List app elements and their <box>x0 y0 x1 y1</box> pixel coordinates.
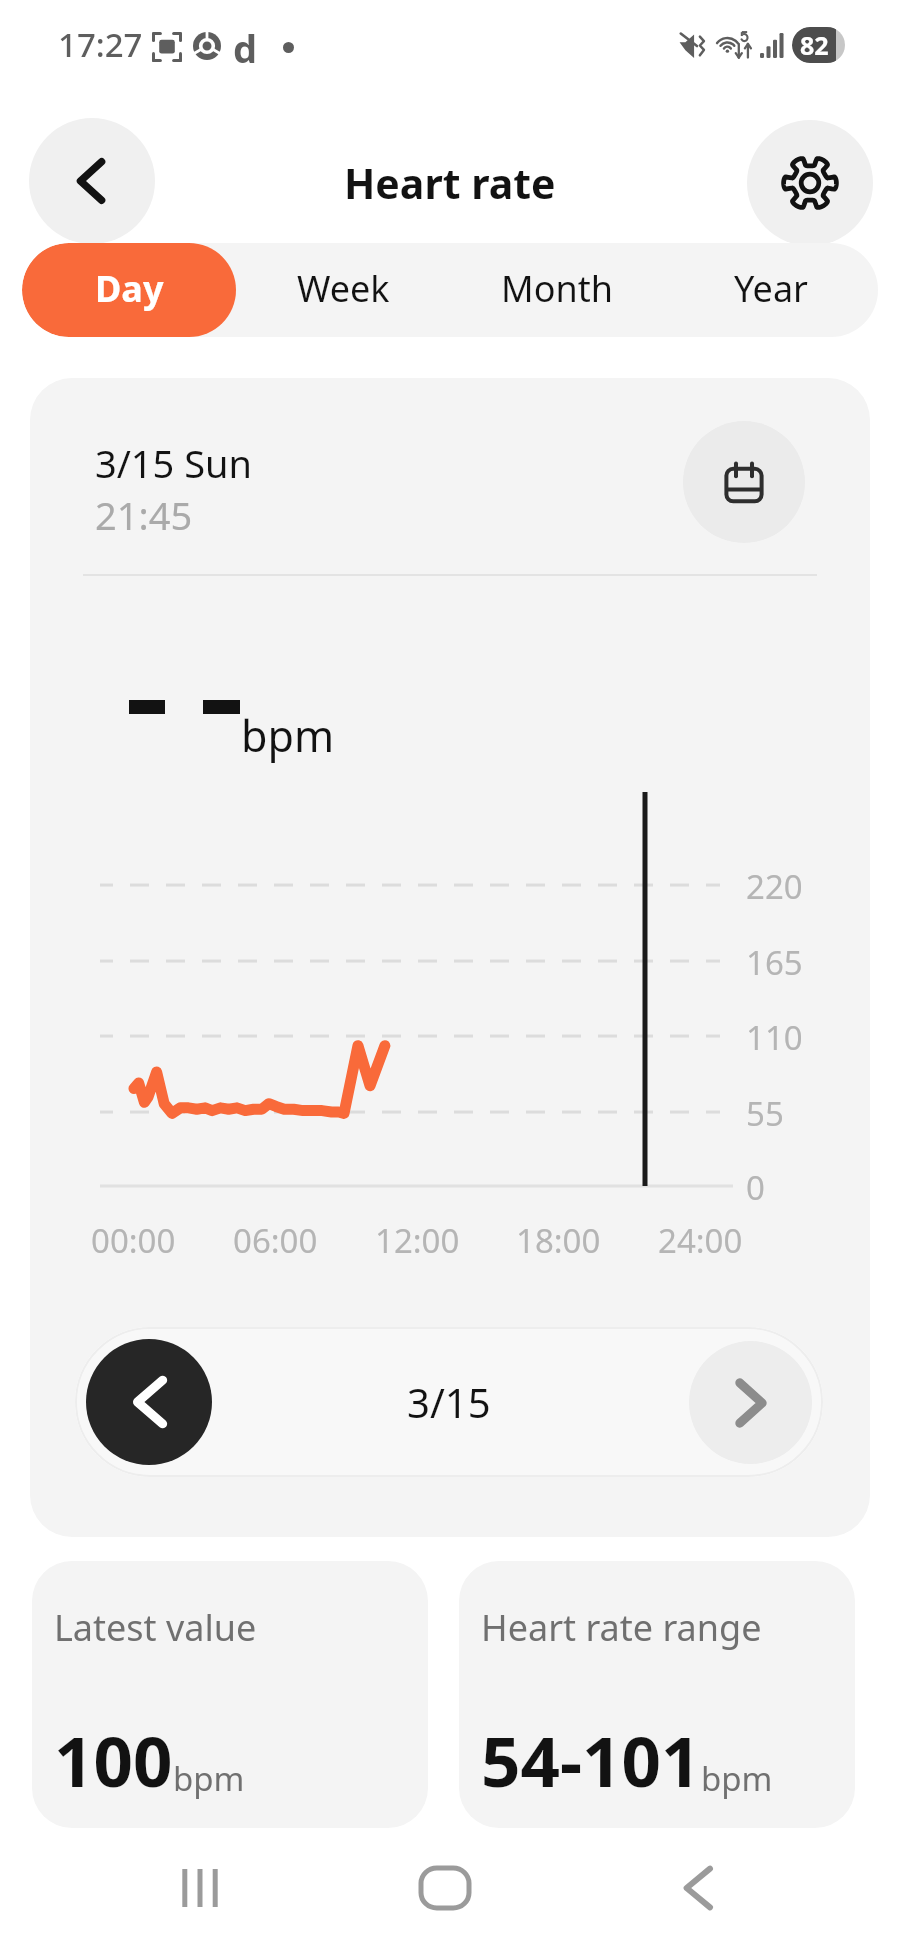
staticText: Day <box>95 264 164 313</box>
staticText: bpm <box>173 1756 245 1801</box>
button[interactable]: Previous day <box>86 1339 212 1465</box>
button[interactable]: Settings <box>747 120 873 246</box>
staticText: 21:45 <box>95 489 193 541</box>
staticText: d <box>233 22 258 74</box>
staticText: 220 <box>746 864 803 909</box>
button[interactable]: Latest value <box>32 1561 428 1828</box>
staticText: Year <box>734 264 808 313</box>
button[interactable]: Back <box>29 118 155 244</box>
staticText: 54-101 <box>481 1713 701 1807</box>
button[interactable]: Recent apps <box>162 1850 238 1926</box>
staticText: 0 <box>746 1165 765 1210</box>
staticText: Latest value <box>54 1603 257 1652</box>
staticText: 12:00 <box>375 1218 460 1263</box>
staticText: 165 <box>746 940 803 985</box>
staticText: 24:00 <box>658 1218 743 1263</box>
button[interactable]: Select date <box>683 421 805 543</box>
staticText: 18:00 <box>516 1218 601 1263</box>
button[interactable]: Back <box>660 1850 736 1926</box>
staticText: Heart rate range <box>481 1603 762 1652</box>
staticText: 82 <box>800 28 829 62</box>
button[interactable]: Home <box>407 1850 483 1926</box>
staticText: 3/15 <box>407 1375 491 1429</box>
button[interactable]: Week <box>236 243 450 337</box>
staticText: 110 <box>746 1015 803 1060</box>
button[interactable]: Month <box>450 243 664 337</box>
staticText: bpm <box>701 1756 773 1801</box>
staticText: 55 <box>746 1091 784 1136</box>
staticText: Heart rate <box>344 155 556 211</box>
staticText: 17:27 <box>58 22 143 67</box>
staticText: 100 <box>54 1713 173 1807</box>
button[interactable]: Year <box>664 243 878 337</box>
staticText: 06:00 <box>233 1218 318 1263</box>
button[interactable]: Day <box>22 243 236 337</box>
staticText: 00:00 <box>91 1218 176 1263</box>
staticText: 3/15 Sun <box>95 437 253 489</box>
button[interactable]: Heart rate range <box>459 1561 855 1828</box>
staticText: Month <box>501 264 613 313</box>
staticText: Week <box>297 264 390 313</box>
button[interactable]: Next day <box>689 1341 812 1464</box>
staticText: bpm <box>241 706 335 765</box>
